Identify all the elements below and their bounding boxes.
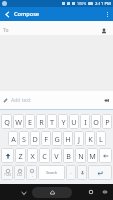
staticText: D <box>32 134 38 144</box>
button[interactable]: G <box>52 131 62 146</box>
staticText: ?123 <box>4 173 11 177</box>
staticText: M <box>89 151 96 161</box>
staticText: Compose <box>14 10 40 18</box>
button[interactable]: Back <box>0 7 14 21</box>
button[interactable]: Z <box>15 148 26 163</box>
button[interactable]: Y <box>58 114 68 129</box>
button[interactable]: E <box>25 114 35 129</box>
button[interactable]: L <box>96 131 106 146</box>
button[interactable]: X <box>27 148 38 163</box>
staticText: L <box>99 134 103 144</box>
staticText: Search <box>46 170 57 175</box>
button[interactable]: T <box>47 114 57 129</box>
button[interactable]: B <box>63 148 74 163</box>
button[interactable]: Screenshot <box>100 187 110 197</box>
staticText: , <box>32 173 33 177</box>
staticText: V <box>54 151 59 161</box>
staticText: Y <box>61 117 66 127</box>
button[interactable]: Comma <box>26 165 37 180</box>
staticText: C <box>42 151 47 161</box>
staticText: G <box>54 134 60 144</box>
staticText: O <box>93 117 99 127</box>
button[interactable]: S <box>19 131 29 146</box>
staticText: U <box>71 117 77 127</box>
button[interactable]: U <box>69 114 79 129</box>
button[interactable]: Back <box>16 185 31 200</box>
button[interactable]: More options <box>101 7 113 21</box>
button[interactable]: Shift <box>1 148 14 163</box>
staticText: F <box>44 134 48 144</box>
staticText: N <box>78 151 84 161</box>
button[interactable]: O <box>91 114 101 129</box>
staticText: X <box>30 151 35 161</box>
staticText: H <box>65 134 71 144</box>
staticText: To <box>3 27 9 34</box>
staticText: R <box>39 117 44 127</box>
staticText: I <box>84 117 87 127</box>
button[interactable]: . <box>66 165 76 180</box>
staticText: W <box>15 117 22 127</box>
button[interactable]: Q <box>1 114 12 129</box>
staticText: C/2 <box>17 173 23 177</box>
button[interactable]: M <box>87 148 98 163</box>
staticText: Z <box>18 151 23 161</box>
button[interactable]: Enter <box>88 165 112 180</box>
staticText: B <box>66 151 71 161</box>
staticText: E <box>28 117 32 127</box>
staticText: 100% <box>77 1 87 6</box>
staticText: Add text <box>11 97 31 104</box>
staticText: P <box>105 117 110 127</box>
button[interactable]: Send <box>102 96 110 104</box>
button[interactable]: F <box>41 131 51 146</box>
button[interactable]: I <box>80 114 90 129</box>
staticText: . <box>70 169 72 176</box>
button[interactable]: W <box>13 114 24 129</box>
button[interactable]: Home <box>32 187 72 198</box>
staticText: S <box>22 134 26 144</box>
staticText: A <box>11 134 16 144</box>
button[interactable]: N <box>75 148 86 163</box>
button[interactable]: K <box>85 131 95 146</box>
button[interactable]: Symbols <box>1 165 13 180</box>
button[interactable]: R <box>36 114 46 129</box>
button[interactable]: J <box>74 131 84 146</box>
button[interactable]: D <box>30 131 40 146</box>
button[interactable]: V <box>51 148 62 163</box>
button[interactable]: Recent apps <box>86 187 96 197</box>
button[interactable]: A <box>8 131 18 146</box>
button[interactable]: Backspace <box>99 148 112 163</box>
button[interactable]: Search <box>38 165 65 180</box>
staticText: J <box>78 134 80 144</box>
staticText: T <box>50 117 54 127</box>
button[interactable]: H <box>63 131 73 146</box>
staticText: 2:11 PM <box>95 1 111 7</box>
button[interactable]: P <box>102 114 112 129</box>
staticText: Q <box>4 117 10 127</box>
button[interactable]: C <box>39 148 50 163</box>
button[interactable]: Add contact <box>99 26 109 35</box>
button[interactable]: Voice input <box>77 165 87 180</box>
staticText: K <box>88 134 93 144</box>
button[interactable]: Emoji <box>14 165 25 180</box>
